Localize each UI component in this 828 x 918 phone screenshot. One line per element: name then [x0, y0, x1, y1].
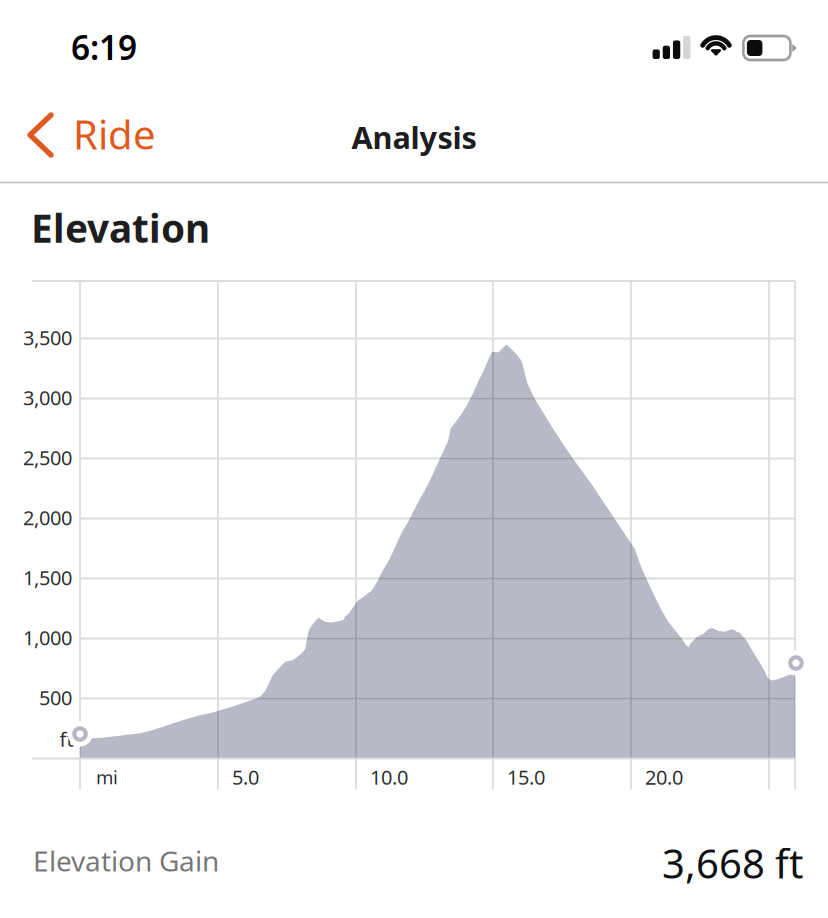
staticText: 2,000 [23, 504, 72, 531]
button[interactable]: Ride [22, 103, 160, 165]
staticText: Elevation Gain [33, 842, 219, 879]
staticText: 6:19 [71, 25, 137, 69]
staticText: Elevation [31, 202, 210, 253]
staticText: 3,668 ft [662, 836, 803, 889]
staticText: 3,500 [23, 324, 72, 351]
staticText: 5.0 [232, 764, 259, 790]
staticText: 20.0 [645, 764, 683, 790]
staticText: Ride [73, 107, 156, 160]
staticText: 15.0 [507, 764, 545, 790]
staticText: mi [96, 765, 118, 789]
staticText: 1,500 [23, 564, 72, 591]
staticText: ft [59, 726, 73, 752]
staticText: Analysis [351, 117, 476, 157]
staticText: 2,500 [23, 444, 72, 471]
staticText: 500 [39, 684, 72, 711]
staticText: 10.0 [370, 764, 408, 790]
staticText: 3,000 [23, 384, 72, 411]
staticText: 1,000 [23, 624, 72, 651]
